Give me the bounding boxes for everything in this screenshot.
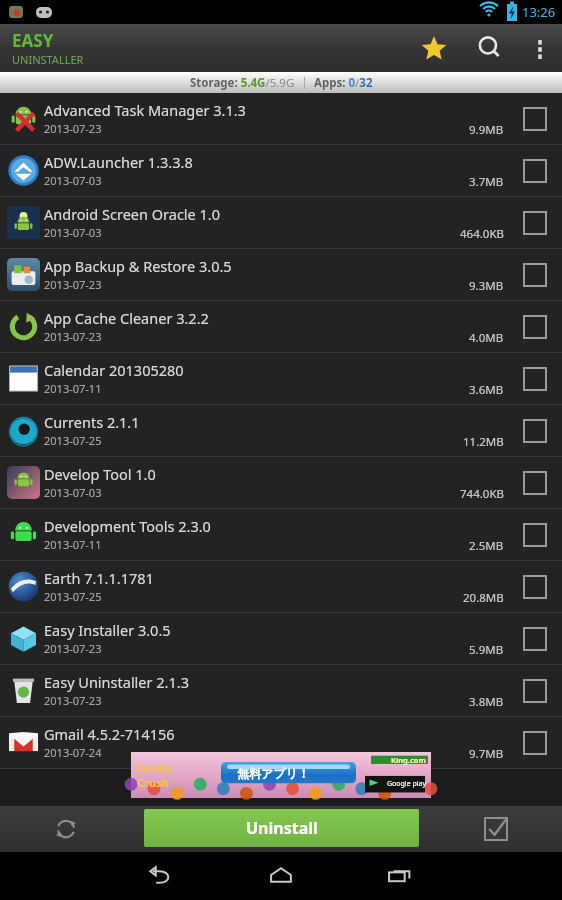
staticText: Currents 2.1.1 — [44, 412, 140, 432]
staticText: Uninstall — [246, 817, 318, 839]
staticText: Google play — [387, 779, 427, 789]
button[interactable]: Recent apps — [355, 852, 445, 900]
button[interactable]: App Backup & Restore 3.0.5 — [0, 249, 562, 300]
staticText: EASY — [12, 29, 54, 52]
button[interactable]: Select App Backup & Restore 3.0.5 — [518, 258, 552, 292]
staticText: 2013-07-03 — [44, 485, 102, 500]
button[interactable]: Advertisement — [131, 752, 431, 798]
button[interactable]: ADW.Launcher 1.3.3.8 — [0, 145, 562, 196]
staticText: Storage: 5.4G/5.9G — [190, 75, 295, 91]
button[interactable]: Refresh — [44, 807, 88, 851]
button[interactable]: Select Gmail 4.5.2-714156 — [518, 726, 552, 760]
button[interactable]: Android Screen Oracle 1.0 — [0, 197, 562, 248]
button[interactable]: App Cache Cleaner 3.2.2 — [0, 301, 562, 352]
button[interactable]: Advanced Task Manager 3.1.3 — [0, 93, 562, 144]
staticText: 2013-07-24 — [44, 745, 102, 760]
staticText: 4.0MB — [469, 330, 504, 346]
staticText: 9.7MB — [469, 746, 504, 762]
staticText: Advanced Task Manager 3.1.3 — [44, 100, 246, 120]
staticText: 20.8MB — [463, 590, 504, 606]
staticText: 2013-07-23 — [44, 641, 102, 656]
staticText: 3.6MB — [469, 382, 504, 398]
staticText: UNINSTALLER — [12, 52, 84, 67]
button[interactable]: Select Android Screen Oracle 1.0 — [518, 206, 552, 240]
staticText: 11.2MB — [463, 434, 504, 450]
staticText: Gmail 4.5.2-714156 — [44, 724, 175, 744]
staticText: 13:26 — [522, 3, 556, 21]
button[interactable]: Select Advanced Task Manager 3.1.3 — [518, 102, 552, 136]
staticText: Develop Tool 1.0 — [44, 464, 156, 484]
button[interactable]: Select Easy Uninstaller 2.1.3 — [518, 674, 552, 708]
staticText: 2013-07-23 — [44, 121, 102, 136]
button[interactable]: Select Develop Tool 1.0 — [518, 466, 552, 500]
button[interactable]: Back — [117, 852, 207, 900]
staticText: Calendar 201305280 — [44, 360, 184, 380]
button[interactable]: Select Development Tools 2.3.0 — [518, 518, 552, 552]
staticText: 2013-07-11 — [44, 381, 102, 396]
button[interactable]: Easy Installer 3.0.5 — [0, 613, 562, 664]
staticText: Android Screen Oracle 1.0 — [44, 204, 221, 224]
button[interactable]: Select Currents 2.1.1 — [518, 414, 552, 448]
staticText: 2013-07-03 — [44, 173, 102, 188]
button[interactable]: Select all — [474, 807, 518, 851]
button[interactable]: More options — [518, 24, 562, 72]
button[interactable]: Development Tools 2.3.0 — [0, 509, 562, 560]
staticText: Apps: 0/32 — [314, 75, 373, 91]
staticText: ADW.Launcher 1.3.3.8 — [44, 152, 193, 172]
staticText: 3.7MB — [469, 174, 504, 190]
button[interactable]: Currents 2.1.1 — [0, 405, 562, 456]
staticText: 744.0KB — [460, 486, 504, 502]
button[interactable]: Select Earth 7.1.1.1781 — [518, 570, 552, 604]
button[interactable]: Select Calendar 201305280 — [518, 362, 552, 396]
staticText: 2.5MB — [469, 538, 504, 554]
staticText: 2013-07-25 — [44, 433, 102, 448]
staticText: 2013-07-23 — [44, 277, 102, 292]
staticText: 2013-07-11 — [44, 537, 102, 552]
staticText: 2013-07-25 — [44, 589, 102, 604]
button[interactable]: Calendar 201305280 — [0, 353, 562, 404]
button[interactable]: Develop Tool 1.0 — [0, 457, 562, 508]
button[interactable]: Favorites — [406, 24, 462, 72]
staticText: 無料アプリ！ — [237, 766, 310, 781]
button[interactable]: Gmail 4.5.2-714156 — [0, 717, 562, 768]
staticText: Candy Crush — [137, 760, 172, 790]
button[interactable]: Uninstall — [144, 809, 419, 847]
staticText: App Cache Cleaner 3.2.2 — [44, 308, 209, 328]
staticText: 3.8MB — [469, 694, 504, 710]
staticText: King.com — [391, 755, 426, 765]
staticText: Easy Uninstaller 2.1.3 — [44, 672, 189, 692]
button[interactable]: Easy Uninstaller 2.1.3 — [0, 665, 562, 716]
button[interactable]: Select App Cache Cleaner 3.2.2 — [518, 310, 552, 344]
staticText: 5.9MB — [469, 642, 504, 658]
button[interactable]: Earth 7.1.1.1781 — [0, 561, 562, 612]
button[interactable]: Select Easy Installer 3.0.5 — [518, 622, 552, 656]
staticText: 2013-07-03 — [44, 225, 102, 240]
staticText: 9.3MB — [469, 278, 504, 294]
staticText: 2013-07-23 — [44, 329, 102, 344]
staticText: 2013-07-23 — [44, 693, 102, 708]
button[interactable]: Select ADW.Launcher 1.3.3.8 — [518, 154, 552, 188]
staticText: Easy Installer 3.0.5 — [44, 620, 171, 640]
button[interactable]: Search — [462, 24, 518, 72]
staticText: Earth 7.1.1.1781 — [44, 568, 154, 588]
staticText: App Backup & Restore 3.0.5 — [44, 256, 232, 276]
button[interactable]: Home — [236, 852, 326, 900]
staticText: 464.0KB — [460, 226, 504, 242]
staticText: 9.9MB — [469, 122, 504, 138]
staticText: Development Tools 2.3.0 — [44, 516, 211, 536]
